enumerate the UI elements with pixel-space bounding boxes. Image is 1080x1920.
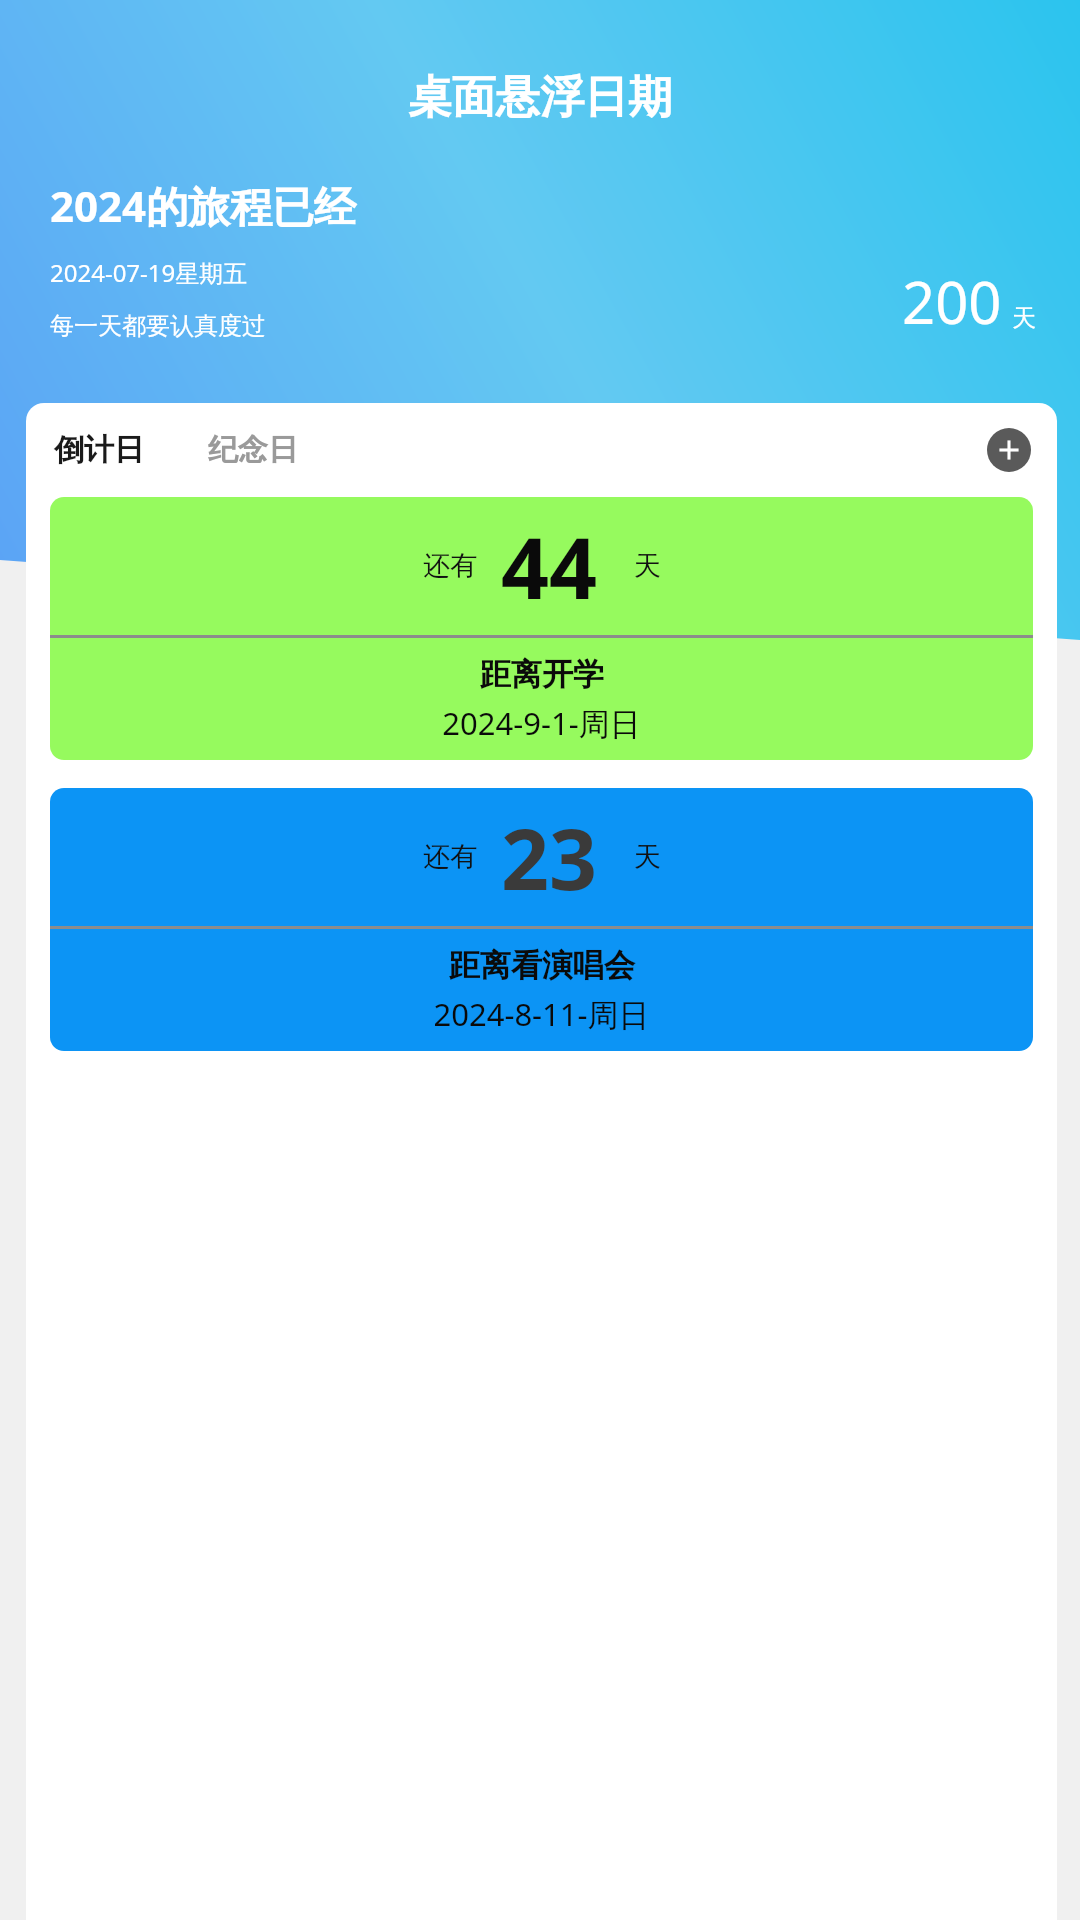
staticText: 23 [501,800,598,914]
staticText: 距离看演唱会 [449,946,635,985]
button[interactable]: 倒计日 [50,425,148,475]
staticText: 2024-8-11-周日 [433,993,650,1035]
staticText: 天 [634,840,661,874]
staticText: 还有 [423,840,477,874]
button[interactable]: Add countdown [987,428,1031,472]
staticText: 2024-07-19星期五 [50,256,248,289]
staticText: 天 [634,549,661,583]
button[interactable]: 纪念日 [204,425,302,475]
staticText: 距离开学 [480,655,604,694]
staticText: 2024-9-1-周日 [442,702,641,744]
staticText: 桌面悬浮日期 [0,70,1080,125]
button[interactable]: 还有 [50,497,1033,760]
staticText: 倒计日 [54,431,144,469]
staticText: 200 [902,262,1002,341]
staticText: 每一天都要认真度过 [50,311,266,341]
staticText: 天 [1012,303,1036,333]
staticText: 纪念日 [208,431,298,469]
staticText: 44 [501,509,598,623]
button[interactable]: 还有 [50,788,1033,1051]
staticText: 还有 [423,549,477,583]
staticText: 2024的旅程已经 [50,177,357,234]
